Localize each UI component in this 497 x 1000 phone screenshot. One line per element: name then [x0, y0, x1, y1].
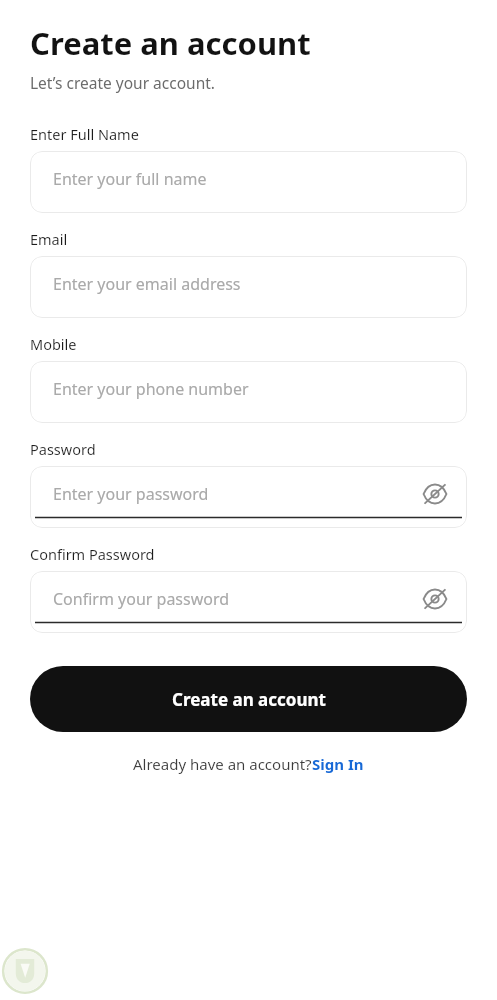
- staticText: Enter your password: [53, 483, 209, 505]
- button[interactable]: Show password: [420, 479, 450, 509]
- staticText: Already have an account?: [133, 754, 312, 774]
- staticText: Confirm Password: [30, 544, 155, 564]
- staticText: Enter your phone number: [53, 378, 249, 400]
- staticText: Create an account: [172, 688, 326, 711]
- staticText: Let’s create your account.: [30, 72, 215, 93]
- staticText: Enter Full Name: [30, 124, 139, 144]
- staticText: Create an account: [30, 22, 311, 64]
- button[interactable]: Enter your phone number: [30, 361, 467, 423]
- button[interactable]: Enter your email address: [30, 256, 467, 318]
- staticText: Email: [30, 229, 68, 249]
- staticText: Enter your email address: [53, 273, 241, 295]
- staticText: Mobile: [30, 334, 77, 354]
- button[interactable]: Create an account: [30, 666, 467, 732]
- button[interactable]: Enter your password: [30, 466, 467, 528]
- staticText: Password: [30, 439, 96, 459]
- button[interactable]: Show confirm password: [420, 584, 450, 614]
- button[interactable]: Confirm your password: [30, 571, 467, 633]
- staticText: Confirm your password: [53, 588, 230, 610]
- button[interactable]: Sign In: [312, 754, 364, 774]
- button[interactable]: Enter your full name: [30, 151, 467, 213]
- staticText: Enter your full name: [53, 168, 207, 190]
